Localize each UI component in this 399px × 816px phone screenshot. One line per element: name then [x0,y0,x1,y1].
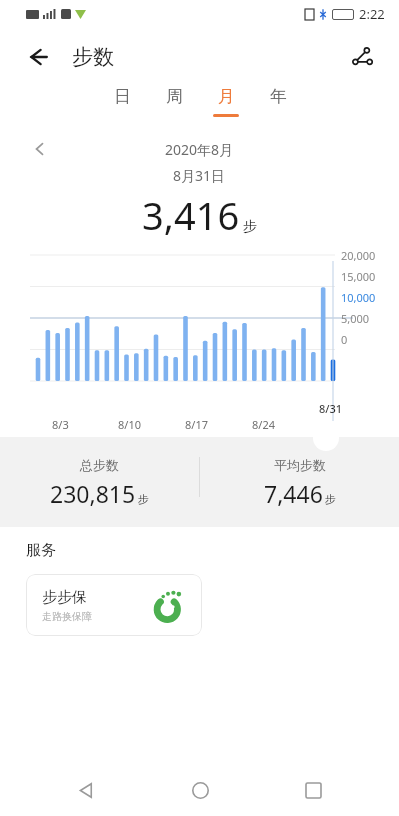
button[interactable]: 步步保 [26,574,202,636]
staticText: 8/3 [52,417,69,432]
button[interactable]: Back [18,37,58,77]
staticText: 月 [218,86,235,107]
staticText: 2020年8月 [165,140,234,159]
button[interactable]: Share [341,36,383,78]
staticText: 日 [114,86,131,107]
staticText: 步 [325,492,336,506]
button[interactable]: 年 [252,86,304,130]
staticText: 总步数 [80,457,119,473]
staticText: 步数 [72,44,114,70]
button[interactable]: Chart scrubber [313,425,339,451]
button[interactable]: 日 [96,86,148,130]
staticText: 走路换保障 [42,610,92,623]
staticText: 平均步数 [274,457,326,473]
staticText: 年 [270,86,287,107]
button[interactable]: 月 [200,86,252,130]
staticText: 8/31 [319,401,343,416]
button[interactable]: Previous month [24,133,56,165]
staticText: 7,446 [264,478,323,509]
button[interactable]: 周 [148,86,200,130]
staticText: 步步保 [42,588,87,607]
staticText: 3,416 [142,189,240,241]
staticText: 20,000 [341,248,376,263]
staticText: 8月31日 [173,166,226,185]
staticText: 步 [243,218,257,236]
staticText: 8/24 [252,417,275,432]
staticText: 周 [166,86,183,107]
staticText: 15,000 [341,269,376,284]
staticText: 230,815 [50,478,136,509]
staticText: 服务 [26,541,56,560]
staticText: 0 [341,332,348,347]
staticText: 8/17 [185,417,208,432]
button[interactable]: Recents [285,764,341,816]
button[interactable]: Home [172,764,228,816]
staticText: 2:22 [359,5,385,23]
staticText: 10,000 [341,290,376,305]
button[interactable]: Back [58,764,114,816]
staticText: 步 [138,492,149,506]
staticText: 8/10 [118,417,141,432]
staticText: 5,000 [341,311,370,326]
